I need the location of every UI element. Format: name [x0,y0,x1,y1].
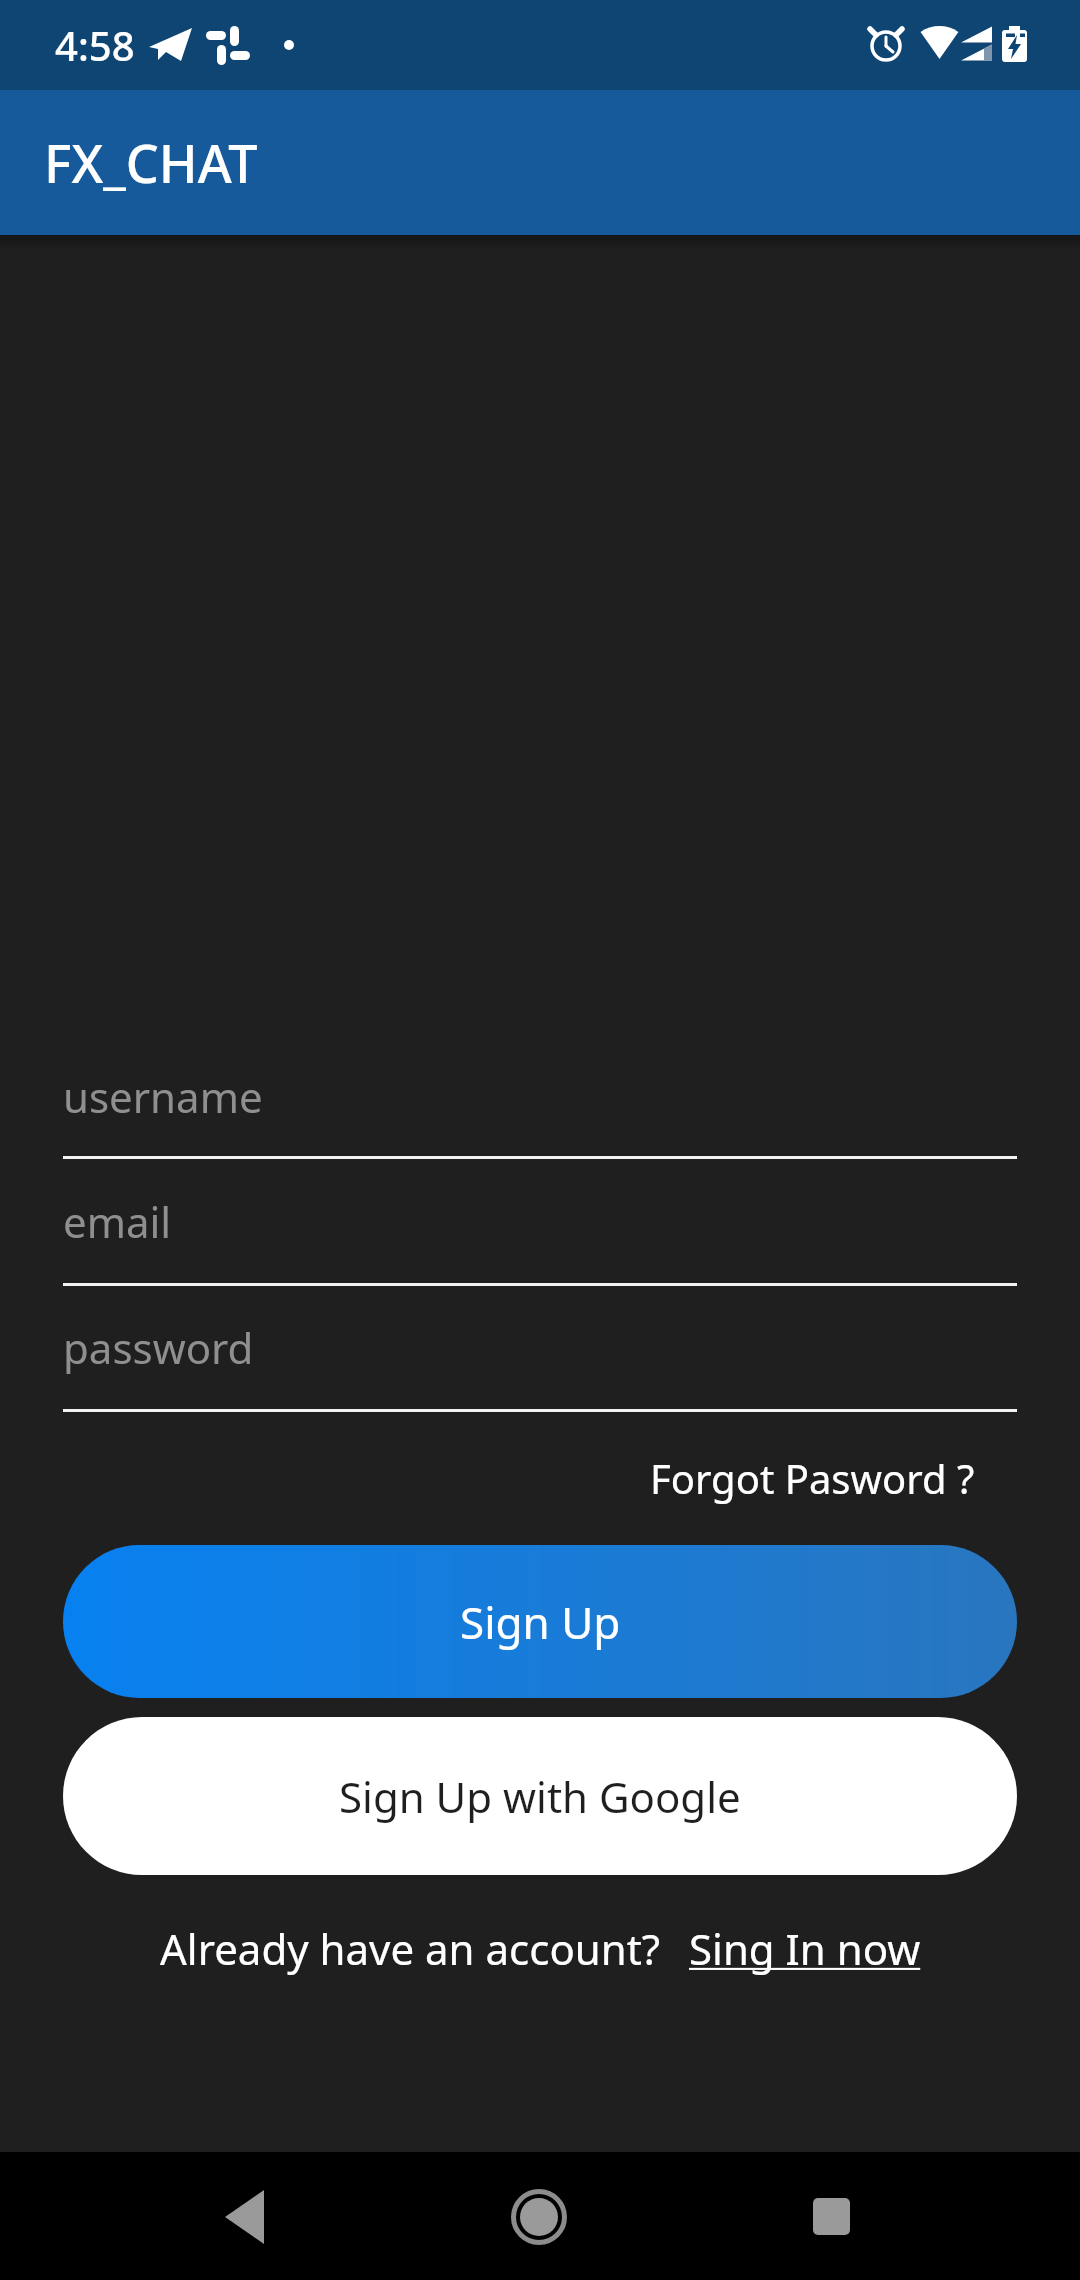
staticText: Already have an account? [160,1920,661,1977]
button[interactable]: Sign Up with Google [63,1717,1017,1875]
button[interactable]: email [63,1191,1017,1251]
staticText: username [63,1068,263,1125]
staticText: Sign Up with Google [339,1768,741,1825]
button[interactable]: password [63,1317,1017,1377]
staticText: email [63,1193,172,1250]
staticText: password [63,1319,254,1376]
staticText: 4:58 [55,18,135,72]
staticText: Sing In now [689,1920,921,1977]
button[interactable]: Sign Up [63,1545,1017,1698]
button[interactable] [720,2152,1080,2280]
staticText: Sign Up [460,1592,621,1652]
staticText: Forgot Pasword ? [650,1451,975,1505]
button[interactable]: Sing In now [689,1920,921,1977]
button[interactable]: username [63,1066,1017,1126]
button[interactable] [0,2152,360,2280]
button[interactable] [360,2152,720,2280]
button[interactable]: Forgot Pasword ? [650,1451,975,1505]
staticText: FX_CHAT [44,127,258,198]
